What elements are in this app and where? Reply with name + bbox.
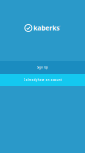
staticText: ® <box>59 26 60 28</box>
staticText: kaberks <box>33 24 59 32</box>
staticText: I already have an account <box>23 78 61 82</box>
button[interactable]: Sign Up <box>0 61 85 74</box>
button[interactable]: I already have an account <box>0 74 85 86</box>
staticText: Sign Up <box>37 66 48 69</box>
